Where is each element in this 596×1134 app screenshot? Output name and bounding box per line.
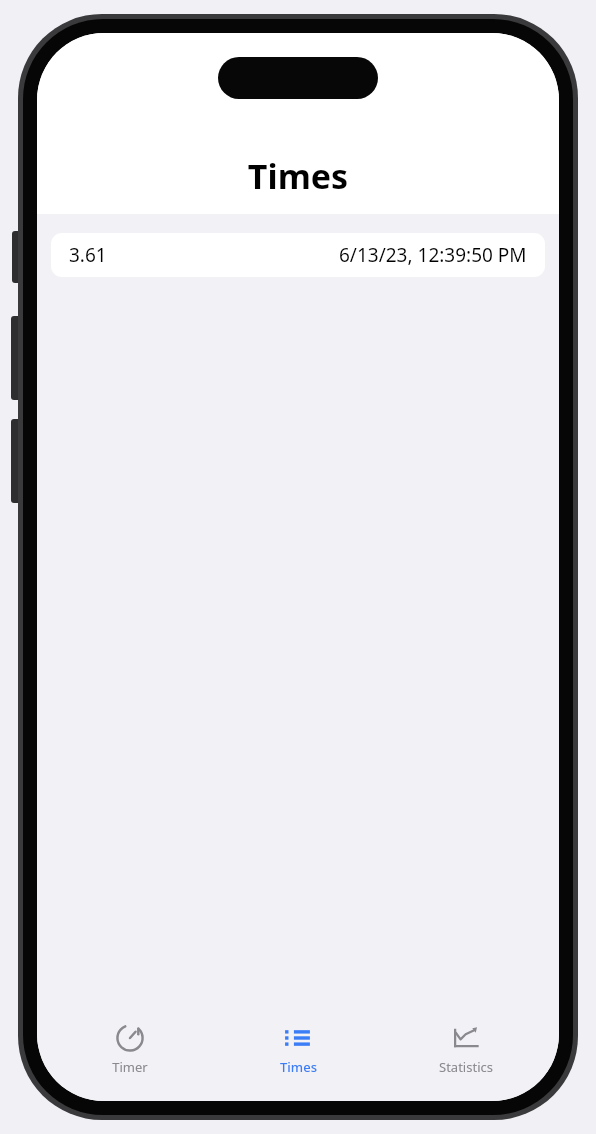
button[interactable]: Timer xyxy=(55,1013,205,1101)
button[interactable]: Times xyxy=(223,1013,373,1101)
button[interactable]: Statistics xyxy=(391,1013,541,1101)
button[interactable]: 3.61 xyxy=(51,233,545,277)
staticText: Times xyxy=(37,153,559,199)
staticText: 6/13/23, 12:39:50 PM xyxy=(339,242,527,268)
staticText: Statistics xyxy=(439,1058,493,1076)
staticText: 3.61 xyxy=(69,242,107,268)
staticText: Timer xyxy=(112,1058,148,1076)
staticText: Times xyxy=(280,1058,317,1076)
